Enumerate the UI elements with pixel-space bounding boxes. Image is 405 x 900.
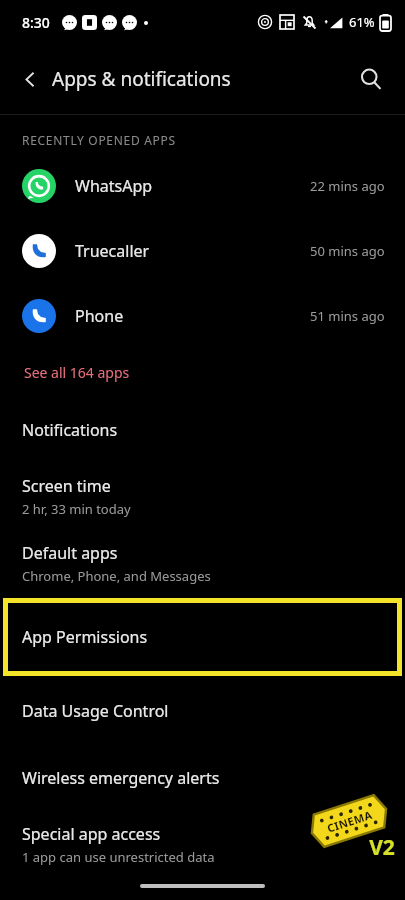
staticText: App Permissions [22, 626, 148, 648]
button[interactable]: App Permissions [0, 597, 405, 677]
button[interactable]: Back [10, 59, 50, 99]
button[interactable]: Data Usage Control [0, 677, 405, 744]
other: Cast [258, 15, 272, 29]
staticText: 1 app can use unrestricted data [22, 848, 215, 866]
button[interactable]: Screen time [0, 463, 405, 530]
staticText: Phone [75, 305, 124, 327]
other: Notifications muted [302, 15, 317, 30]
staticText: Wireless emergency alerts [22, 767, 220, 789]
staticText: Default apps [22, 542, 118, 564]
staticText: Special app access [22, 823, 161, 845]
staticText: 51 mins ago [310, 307, 385, 325]
staticText: Truecaller [75, 240, 150, 262]
staticText: CINEMA [325, 807, 374, 836]
button[interactable]: Notifications [0, 396, 405, 463]
staticText: See all 164 apps [24, 363, 130, 382]
button[interactable]: Truecaller [0, 218, 405, 283]
staticText: 2 hr, 33 min today [22, 500, 131, 518]
button[interactable]: Phone [0, 283, 405, 348]
staticText: Notifications [22, 419, 118, 441]
staticText: Chrome, Phone, and Messages [22, 567, 211, 585]
staticText: Apps & notifications [52, 66, 231, 92]
button[interactable]: Search [349, 57, 393, 101]
staticText: Data Usage Control [22, 700, 169, 722]
button[interactable]: Wireless emergency alerts [0, 744, 405, 811]
staticText: V2 [369, 833, 395, 862]
staticText: 50 mins ago [310, 242, 385, 260]
staticText: WhatsApp [75, 175, 153, 197]
staticText: RECENTLY OPENED APPS [22, 132, 176, 148]
staticText: 61% [349, 13, 375, 31]
button[interactable]: Special app access [0, 811, 405, 878]
staticText: Screen time [22, 475, 111, 497]
staticText: 8:30 [22, 13, 50, 32]
button[interactable]: WhatsApp [0, 153, 405, 218]
button[interactable]: Default apps [0, 530, 405, 597]
button[interactable]: See all 164 apps [0, 348, 405, 396]
staticText: 22 mins ago [310, 177, 385, 195]
